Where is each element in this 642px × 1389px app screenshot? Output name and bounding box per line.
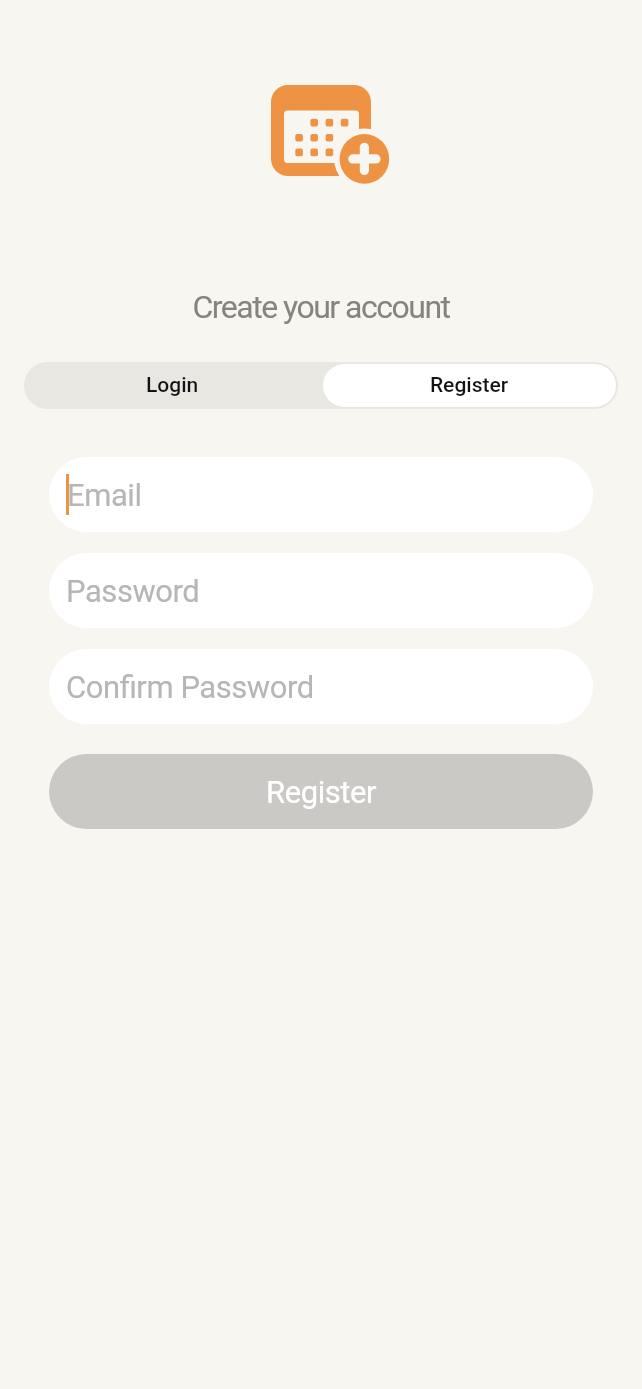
staticText: Password xyxy=(66,573,200,609)
button[interactable]: Register xyxy=(323,364,616,407)
button[interactable]: Email xyxy=(49,457,593,532)
button[interactable]: Password xyxy=(49,553,593,628)
staticText: Confirm Password xyxy=(66,669,314,705)
button[interactable]: Login xyxy=(24,362,321,409)
button[interactable]: Confirm Password xyxy=(49,649,593,724)
other: Add calendar event xyxy=(271,85,390,184)
staticText: Register xyxy=(266,774,377,810)
staticText: Register xyxy=(430,373,509,398)
staticText: Create your account xyxy=(192,288,450,326)
button[interactable]: Register xyxy=(49,754,593,829)
staticText: Login xyxy=(146,373,199,398)
staticText: Email xyxy=(67,477,142,513)
